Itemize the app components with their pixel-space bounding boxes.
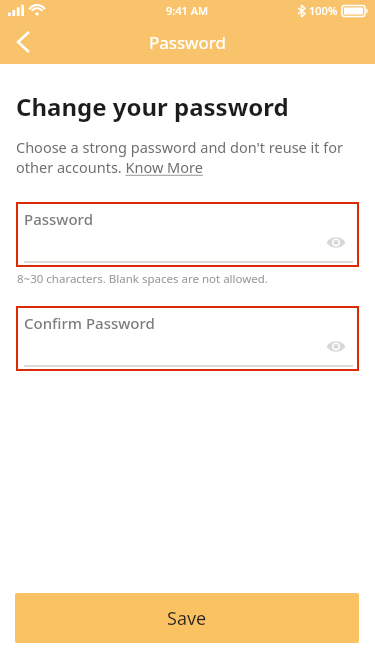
staticText: Password [149, 31, 226, 54]
staticText: 8~30 characters. Blank spaces are not al… [17, 271, 268, 287]
staticText: Choose a strong password and don't reuse… [16, 137, 359, 178]
staticText: Password [24, 209, 93, 229]
button[interactable]: Confirm Password [16, 306, 359, 371]
staticText: 9:41 AM [166, 3, 209, 18]
staticText: Confirm Password [24, 313, 155, 333]
button[interactable]: Save [15, 593, 359, 643]
staticText: 100% [309, 3, 338, 18]
button[interactable]: Show password [319, 330, 353, 362]
staticText: Change your password [16, 90, 289, 123]
button[interactable]: Password [16, 202, 359, 267]
staticText: Save [167, 606, 207, 631]
button[interactable]: Show password [319, 226, 353, 258]
button[interactable]: Back [0, 20, 46, 64]
